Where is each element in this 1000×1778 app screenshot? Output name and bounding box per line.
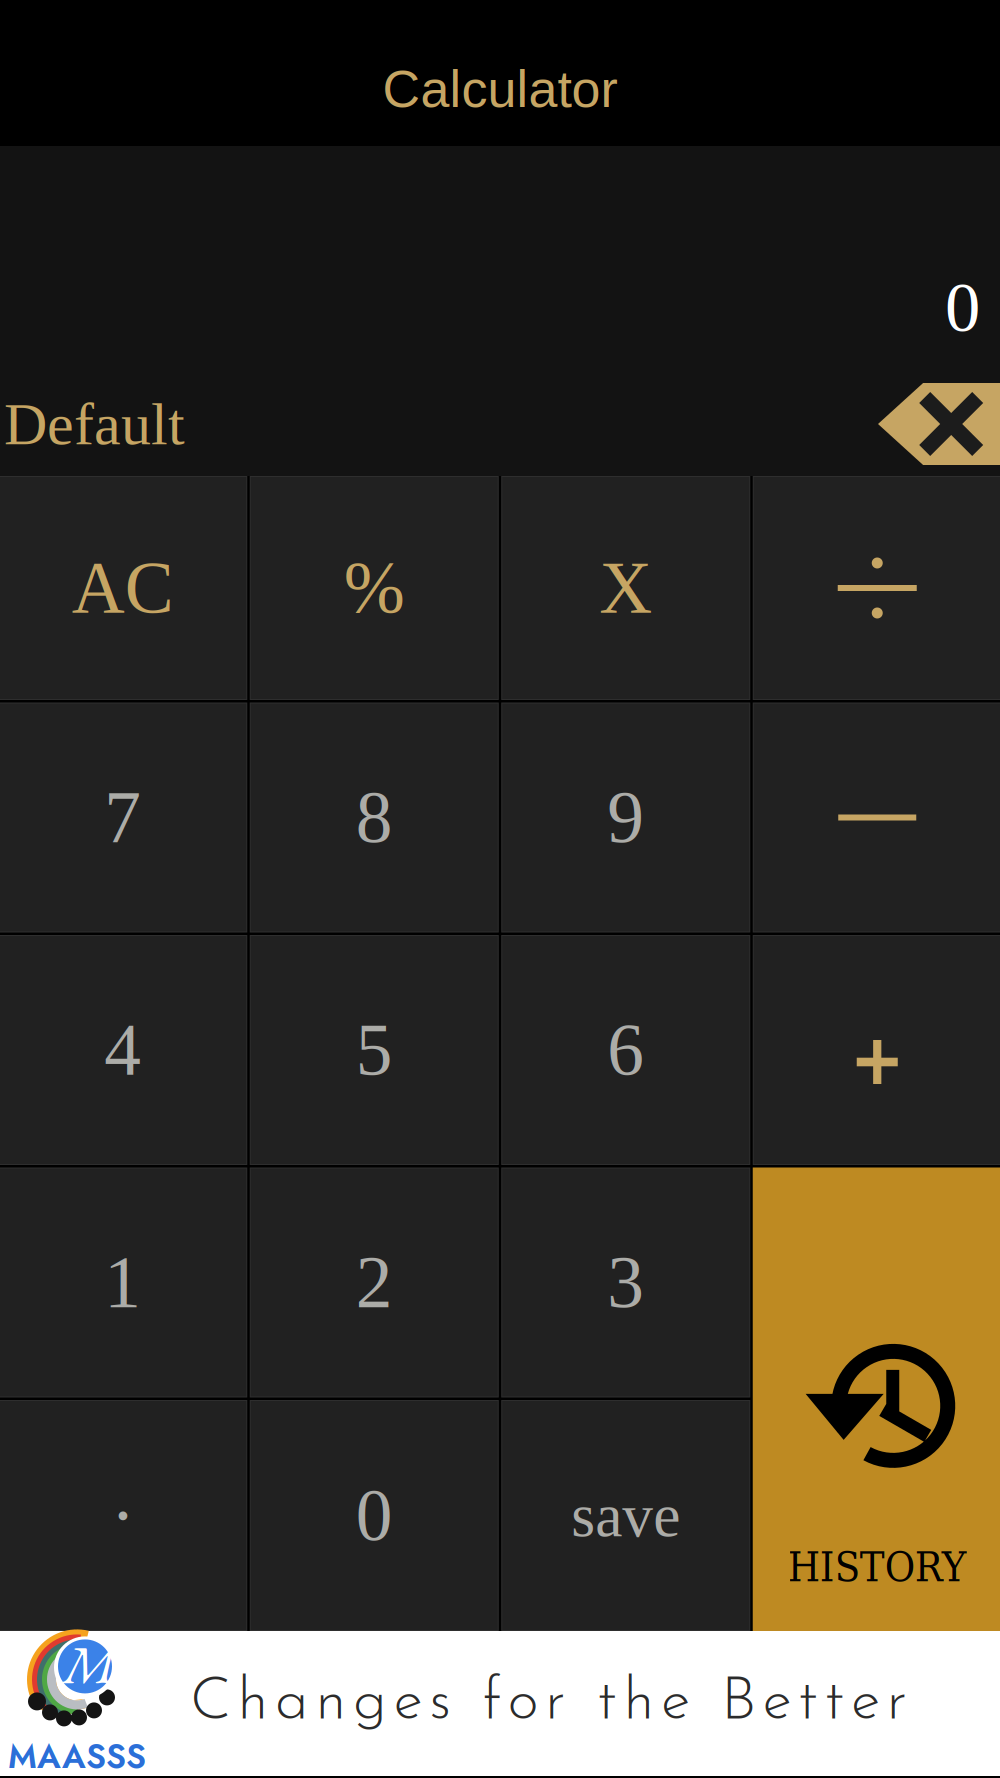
staticText: Default <box>4 391 185 457</box>
staticText: Changes for the Better <box>190 1673 907 1733</box>
button[interactable]: HISTORY <box>753 1167 1000 1631</box>
staticText: M <box>63 1630 116 1699</box>
button[interactable]: Divide <box>753 476 1000 700</box>
staticText: save <box>571 1481 680 1549</box>
button[interactable]: 9 <box>501 702 750 932</box>
button[interactable]: save <box>501 1400 750 1631</box>
button[interactable]: · <box>0 1400 247 1631</box>
staticText: Calculator <box>382 60 617 118</box>
staticText: 4 <box>104 1009 141 1091</box>
staticText: AC <box>72 547 174 629</box>
staticText: 1 <box>104 1242 141 1323</box>
button[interactable]: Minus <box>753 702 1000 932</box>
button[interactable]: 1 <box>0 1167 247 1397</box>
button[interactable]: AC <box>0 476 247 700</box>
staticText: 6 <box>607 1009 644 1091</box>
button[interactable]: 7 <box>0 702 247 932</box>
button[interactable]: 3 <box>501 1167 750 1397</box>
button[interactable]: 5 <box>250 935 499 1165</box>
staticText: 5 <box>356 1009 393 1091</box>
staticText: 2 <box>356 1242 393 1323</box>
staticText: 8 <box>356 777 393 858</box>
staticText: 7 <box>104 777 141 858</box>
staticText: X <box>599 547 652 629</box>
button[interactable]: Backspace <box>878 383 1000 465</box>
button[interactable]: 0 <box>250 1400 499 1631</box>
button[interactable]: Plus <box>753 935 1000 1165</box>
staticText: 0 <box>356 1475 393 1556</box>
button[interactable]: 4 <box>0 935 247 1165</box>
staticText: MAASSS <box>8 1732 146 1778</box>
staticText: 0 <box>945 268 980 346</box>
staticText: · <box>111 1475 135 1556</box>
button[interactable]: % <box>250 476 499 700</box>
button[interactable]: 2 <box>250 1167 499 1397</box>
button[interactable]: 6 <box>501 935 750 1165</box>
button[interactable]: 8 <box>250 702 499 932</box>
staticText: 9 <box>607 777 644 858</box>
staticText: % <box>344 547 405 629</box>
staticText: 3 <box>607 1242 644 1323</box>
button[interactable]: X <box>501 476 750 700</box>
staticText: HISTORY <box>788 1543 967 1591</box>
